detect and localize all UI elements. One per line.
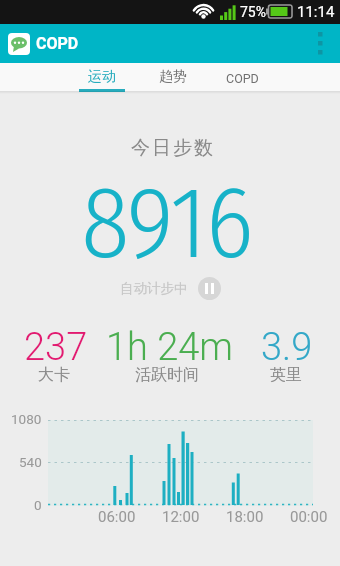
staticText: 英里 (270, 365, 302, 385)
staticText: 00:00 (290, 508, 328, 526)
staticText: 237 (24, 325, 88, 370)
staticText: 18:00 (226, 508, 264, 526)
staticText: 1080 (11, 411, 42, 427)
staticText: COPD (226, 71, 259, 86)
staticText: 8916 (81, 163, 253, 283)
staticText: 自动计步中 (120, 280, 188, 297)
staticText: 3.9 (261, 325, 313, 370)
button[interactable] (300, 24, 340, 63)
staticText: 1h 24m (106, 325, 234, 370)
staticText: 运动 (88, 68, 116, 86)
staticText: COPD (36, 34, 79, 53)
button[interactable]: COPD (219, 63, 265, 91)
button[interactable]: 自动计步中 (0, 272, 340, 305)
button[interactable]: 运动 (79, 63, 125, 91)
staticText: 今日步数 (130, 136, 214, 160)
button[interactable]: 趋势 (150, 63, 196, 91)
staticText: 06:00 (98, 508, 136, 526)
staticText: 11:14 (297, 3, 335, 21)
staticText: 12:00 (162, 508, 200, 526)
staticText: 75% (240, 4, 266, 20)
staticText: 活跃时间 (135, 365, 199, 385)
staticText: 540 (19, 454, 42, 470)
staticText: 大卡 (38, 365, 70, 385)
staticText: 0 (34, 497, 42, 513)
staticText: 趋势 (159, 68, 187, 86)
